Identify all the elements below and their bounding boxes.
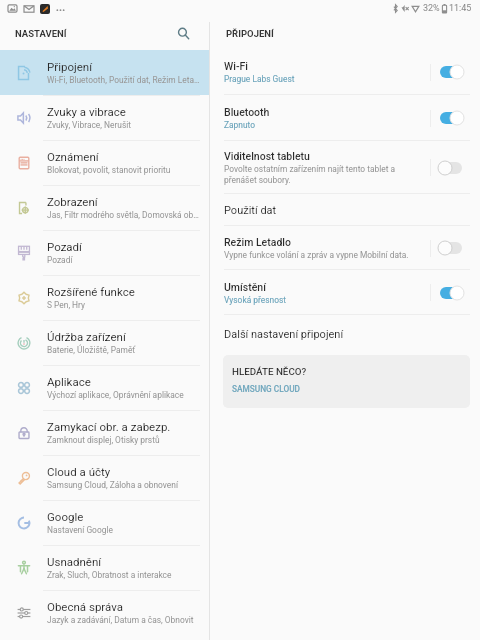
staticText: NASTAVENÍ (15, 28, 67, 39)
staticText: Obecná správa (47, 600, 123, 613)
button[interactable]: Search (173, 23, 193, 43)
button[interactable]: Usnadnění (0, 545, 209, 590)
button[interactable]: Toggle off (440, 160, 466, 176)
button[interactable]: Zobrazení (0, 185, 209, 230)
staticText: Wi-Fi, Bluetooth, Použití dat, Režim Let… (47, 75, 200, 85)
staticText: Wi-Fi (224, 60, 248, 72)
staticText: Blokovat, povolit, stanovit prioritu (47, 165, 171, 175)
staticText: Zvuky, Vibrace, Nerušit (47, 120, 132, 130)
staticText: Rozšířené funkce (47, 285, 135, 298)
button[interactable]: Toggle on (440, 285, 466, 301)
staticText: Google (47, 510, 84, 523)
button[interactable]: Obecná správa (0, 590, 209, 635)
staticText: Usnadnění (47, 555, 102, 568)
staticText: Aplikace (47, 375, 91, 388)
staticText: Baterie, Úložiště, Paměť (47, 345, 136, 355)
button[interactable]: Zamykací obr. a zabezp. (0, 410, 209, 455)
button[interactable]: Google (0, 500, 209, 545)
staticText: Pozadí (47, 255, 73, 265)
staticText: Připojení (47, 60, 93, 73)
button[interactable]: Toggle on (440, 64, 466, 80)
staticText: Zrak, Sluch, Obratnost a interakce (47, 570, 172, 580)
staticText: Zapnuto (224, 120, 256, 130)
staticText: PŘIPOJENÍ (226, 28, 274, 39)
staticText: Povolte ostatním zařízením najít tento t… (224, 164, 396, 185)
button[interactable]: Údržba zařízení (0, 320, 209, 365)
staticText: Bluetooth (224, 106, 270, 118)
staticText: Prague Labs Guest (224, 74, 295, 84)
staticText: Nastavení Google (47, 525, 113, 535)
button[interactable]: Zvuky a vibrace (0, 95, 209, 140)
staticText: Zobrazení (47, 195, 98, 208)
staticText: Další nastavení připojení (224, 328, 344, 341)
staticText: HLEDÁTE NĚCO? (232, 366, 307, 377)
staticText: Zamykací obr. a zabezp. (47, 420, 171, 433)
staticText: Údržba zařízení (47, 330, 126, 343)
button[interactable]: Rozšířené funkce (0, 275, 209, 320)
button[interactable]: Oznámení (0, 140, 209, 185)
button[interactable]: Režim Letadlo (210, 226, 480, 270)
staticText: Vypne funkce volání a zpráv a vypne Mobi… (224, 250, 409, 260)
staticText: Zvuky a vibrace (47, 105, 126, 118)
button[interactable]: Aplikace (0, 365, 209, 410)
staticText: 32% (423, 3, 440, 14)
button[interactable]: Wi-Fi (210, 49, 480, 95)
staticText: Cloud a účty (47, 465, 111, 478)
staticText: Viditelnost tabletu (224, 150, 310, 162)
staticText: Jas, Filtr modrého světla, Domovská ob… (47, 210, 199, 220)
button[interactable]: Bluetooth (210, 95, 480, 141)
staticText: Výchozí aplikace, Oprávnění aplikace (47, 390, 184, 400)
staticText: Oznámení (47, 150, 99, 163)
staticText: Použití dat (224, 204, 277, 217)
staticText: Samsung Cloud, Záloha a obnovení (47, 480, 179, 490)
staticText: SAMSUNG CLOUD (232, 384, 301, 394)
button[interactable]: HLEDÁTE NĚCO? (223, 355, 470, 408)
button[interactable]: Pozadí (0, 230, 209, 275)
button[interactable]: Viditelnost tabletu (210, 141, 480, 194)
button[interactable]: Toggle off (440, 240, 466, 256)
staticText: Pozadí (47, 240, 82, 253)
button[interactable]: Toggle on (440, 110, 466, 126)
staticText: 11:45 (449, 3, 472, 14)
staticText: Zamknout displej, Otisky prstů (47, 435, 160, 445)
button[interactable]: Cloud a účty (0, 455, 209, 500)
staticText: S Pen, Hry (47, 300, 85, 310)
staticText: Umístění (224, 281, 266, 293)
staticText: Vysoká přesnost (224, 295, 287, 305)
button[interactable]: Připojení (0, 50, 209, 95)
button[interactable]: Umístění (210, 270, 480, 315)
staticText: Režim Letadlo (224, 236, 291, 248)
staticText: Jazyk a zadávání, Datum a čas, Obnovit (47, 615, 194, 625)
